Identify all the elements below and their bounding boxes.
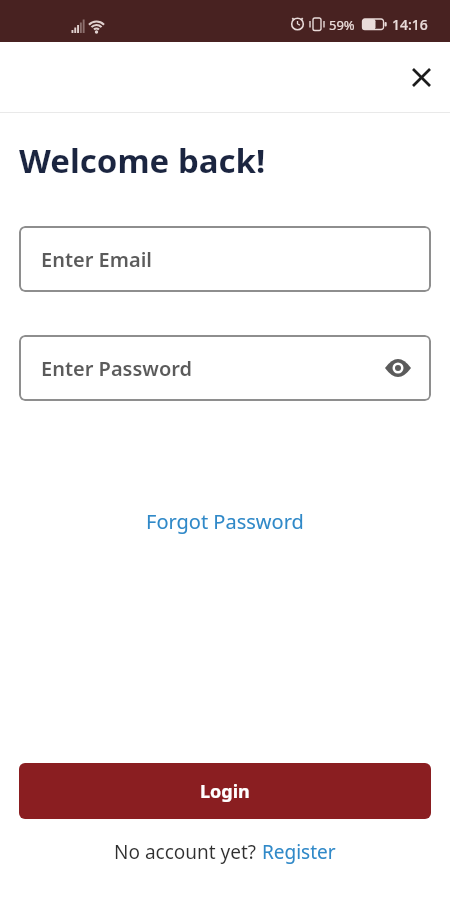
staticText: 14:16 bbox=[392, 15, 428, 34]
staticText: Enter Email bbox=[41, 246, 152, 273]
staticText: Welcome back! bbox=[19, 138, 266, 183]
staticText: Enter Password bbox=[41, 355, 193, 382]
staticText: Register bbox=[262, 839, 336, 865]
button[interactable]: Enter Email bbox=[19, 226, 431, 292]
staticText: Login bbox=[200, 779, 250, 804]
staticText: Forgot Password bbox=[146, 508, 304, 535]
button[interactable]: Login bbox=[19, 763, 431, 819]
staticText: 59% bbox=[329, 16, 355, 34]
button[interactable]: Enter Password bbox=[19, 335, 431, 401]
staticText: No account yet? bbox=[114, 839, 262, 865]
button[interactable]: Forgot Password bbox=[146, 508, 304, 535]
button[interactable]: Register bbox=[262, 839, 336, 865]
button[interactable] bbox=[397, 53, 445, 101]
